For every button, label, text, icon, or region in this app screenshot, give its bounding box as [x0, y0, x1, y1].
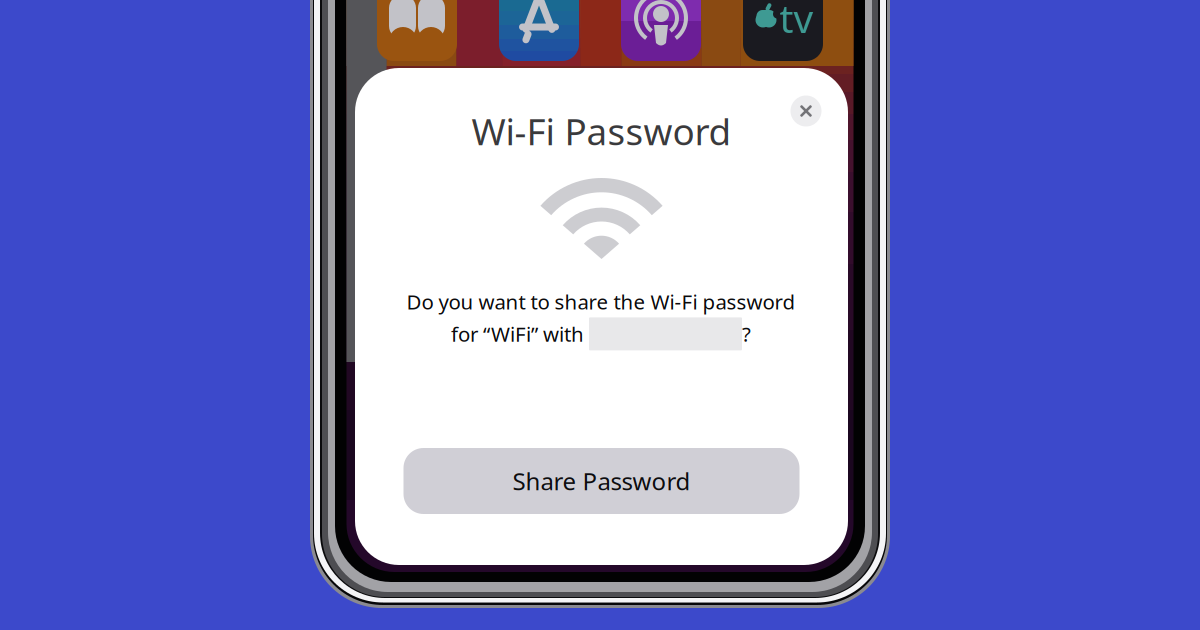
staticText: Wi-Fi Password	[471, 106, 731, 156]
staticText: for “WiFi” with	[451, 320, 589, 348]
staticText: tv	[779, 0, 813, 44]
staticText: Share Password	[512, 465, 690, 497]
button[interactable]: Close	[790, 95, 821, 126]
staticText: Do you want to share the Wi-Fi password	[406, 288, 795, 315]
button[interactable]: Share Password	[403, 448, 799, 514]
staticText: ?	[742, 320, 751, 348]
